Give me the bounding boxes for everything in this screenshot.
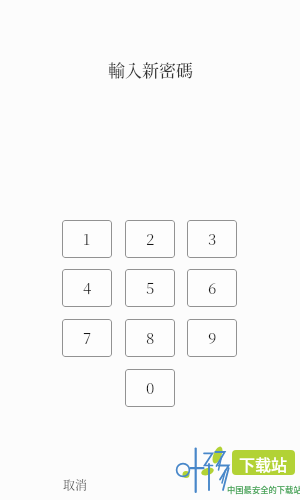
staticText: 6	[208, 277, 217, 299]
staticText: 4	[83, 277, 92, 299]
staticText: 0	[146, 377, 155, 399]
button[interactable]: 4	[62, 269, 112, 307]
staticText: 3	[208, 228, 217, 250]
staticText: 2	[146, 228, 155, 250]
staticText: 7	[83, 327, 92, 349]
button[interactable]: 6	[187, 269, 237, 307]
staticText: 5	[146, 277, 155, 299]
button[interactable]: 8	[125, 319, 175, 357]
staticText: 取消	[63, 476, 88, 493]
button[interactable]: 7	[62, 319, 112, 357]
button[interactable]: 1	[62, 220, 112, 258]
button[interactable]: 9	[187, 319, 237, 357]
staticText: 9	[208, 327, 217, 349]
staticText: 輸入新密碼	[108, 57, 193, 81]
button[interactable]: 0	[125, 369, 175, 407]
staticText: 下载站	[239, 452, 288, 475]
button[interactable]: 取消	[50, 472, 100, 496]
button[interactable]: 2	[125, 220, 175, 258]
button[interactable]: 3	[187, 220, 237, 258]
staticText: 中国最安全的下载站	[227, 483, 300, 495]
button[interactable]: 5	[125, 269, 175, 307]
staticText: 8	[146, 327, 155, 349]
staticText: 1	[83, 228, 91, 250]
